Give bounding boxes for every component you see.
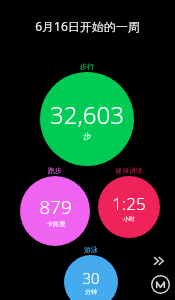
staticText: 分钟 bbox=[85, 288, 97, 296]
staticText: 879 bbox=[39, 194, 72, 220]
staticText: 跑步 bbox=[48, 166, 62, 175]
button[interactable]: 30 bbox=[64, 255, 118, 300]
button[interactable]: 1:25 bbox=[98, 176, 160, 238]
button[interactable]: 32,603 bbox=[40, 72, 134, 166]
button[interactable]: 879 bbox=[20, 176, 90, 246]
staticText: 卡路里 bbox=[47, 220, 65, 228]
staticText: 30 bbox=[82, 268, 100, 288]
staticText: 32,603 bbox=[50, 98, 124, 131]
staticText: 步 bbox=[83, 131, 91, 141]
staticText: 健身训练 bbox=[115, 166, 143, 175]
staticText: 步行 bbox=[80, 62, 94, 71]
staticText: 小时 bbox=[123, 215, 135, 223]
staticText: 游泳 bbox=[84, 245, 98, 254]
button[interactable]: 下一页 bbox=[148, 250, 170, 272]
staticText: 6月16日开始的一周 bbox=[35, 18, 140, 34]
staticText: 1:25 bbox=[112, 192, 146, 215]
button[interactable]: 应用标志 bbox=[148, 272, 172, 296]
